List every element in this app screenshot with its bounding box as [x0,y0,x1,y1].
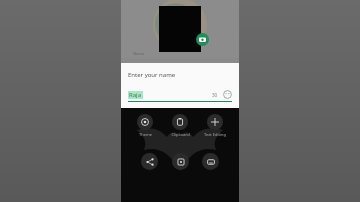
button[interactable]: Keyboard layout [202,153,219,170]
staticText: Clipboard [171,132,190,137]
button[interactable]: Change profile photo [196,33,209,46]
staticText: Name [133,51,145,56]
staticText: Raja [129,91,142,99]
button[interactable]: Raja [128,90,232,99]
button[interactable]: Emoji [223,90,232,99]
staticText: 30 [212,92,218,98]
button[interactable]: Translate [172,153,189,170]
button[interactable]: Share [141,153,158,170]
staticText: Theme [139,132,152,137]
staticText: Text Editing [204,132,226,137]
button[interactable]: Clipboard [163,114,197,137]
staticText: Enter your name [128,71,176,79]
button[interactable]: Theme [128,114,162,137]
button[interactable]: Text Editing [198,114,232,137]
